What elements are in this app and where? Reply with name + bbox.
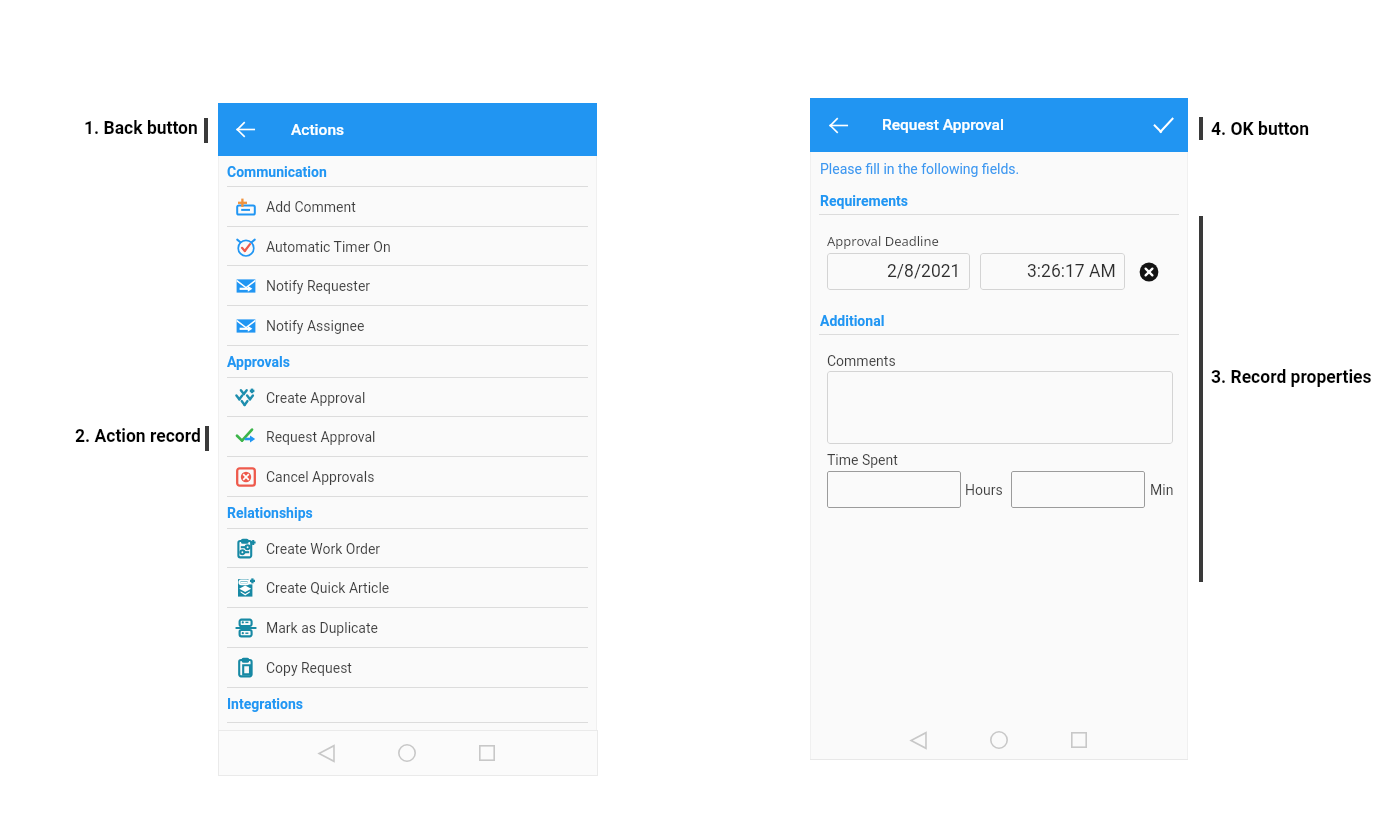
button[interactable]: OK xyxy=(1142,98,1184,152)
staticText: 2/8/2021 xyxy=(887,261,961,282)
button[interactable]: Create Quick Article xyxy=(218,568,597,608)
button[interactable]: Comments xyxy=(827,371,1173,444)
staticText: Approvals xyxy=(227,354,290,370)
button[interactable]: Hours xyxy=(827,471,961,508)
staticText: 4. OK button xyxy=(1211,119,1309,140)
staticText: 3:26:17 AM xyxy=(1027,261,1116,282)
button[interactable]: Recent apps xyxy=(1061,718,1097,762)
button[interactable]: 3:26:17 AM xyxy=(980,253,1125,290)
staticText: Integrations xyxy=(227,696,304,712)
staticText: Requirements xyxy=(820,193,908,209)
staticText: 2. Action record xyxy=(75,426,201,447)
button[interactable]: Create Approval xyxy=(218,378,597,418)
staticText: Create Approval xyxy=(266,390,366,406)
staticText: Relationships xyxy=(227,505,313,521)
button[interactable]: Notify Assignee xyxy=(218,306,597,346)
staticText: Automatic Timer On xyxy=(266,239,391,255)
button[interactable]: Back xyxy=(308,730,344,776)
staticText: Add Comment xyxy=(266,199,356,215)
staticText: Create Quick Article xyxy=(266,580,390,596)
staticText: 3. Record properties xyxy=(1211,367,1372,388)
staticText: Min xyxy=(1150,482,1174,498)
staticText: 1. Back button xyxy=(84,118,198,139)
staticText: Approval Deadline xyxy=(827,232,939,250)
button[interactable]: Add Comment xyxy=(218,187,597,227)
staticText: Request Approval xyxy=(266,429,376,445)
staticText: Communication xyxy=(227,164,327,180)
button[interactable]: Create Work Order xyxy=(218,529,597,569)
staticText: Hours xyxy=(965,482,1003,498)
staticText: Notify Assignee xyxy=(266,318,365,334)
staticText: Mark as Duplicate xyxy=(266,620,378,636)
button[interactable]: Home xyxy=(389,730,425,776)
button[interactable]: Copy Request xyxy=(218,648,597,688)
button[interactable]: Recent apps xyxy=(469,730,505,776)
button[interactable]: Back xyxy=(820,98,857,152)
button[interactable]: Home xyxy=(981,718,1017,762)
staticText: Actions xyxy=(291,121,345,139)
button[interactable]: Clear date xyxy=(1138,261,1160,283)
staticText: Cancel Approvals xyxy=(266,469,375,485)
staticText: Time Spent xyxy=(827,452,898,468)
button[interactable]: Request Approval xyxy=(218,417,597,457)
button[interactable]: 2/8/2021 xyxy=(827,253,970,290)
button[interactable]: Cancel Approvals xyxy=(218,457,597,497)
button[interactable]: Automatic Timer On xyxy=(218,227,597,267)
button[interactable]: Minutes xyxy=(1011,471,1145,508)
staticText: Copy Request xyxy=(266,660,352,676)
button[interactable]: Mark as Duplicate xyxy=(218,608,597,648)
button[interactable]: Notify Requester xyxy=(218,266,597,306)
button[interactable]: Back xyxy=(900,718,936,762)
staticText: Additional xyxy=(820,313,885,329)
staticText: Notify Requester xyxy=(266,278,371,294)
button[interactable]: Back xyxy=(227,103,263,156)
staticText: Request Approval xyxy=(882,116,1004,134)
staticText: Please fill in the following fields. xyxy=(820,161,1020,177)
staticText: Comments xyxy=(827,353,896,369)
staticText: Create Work Order xyxy=(266,541,381,557)
